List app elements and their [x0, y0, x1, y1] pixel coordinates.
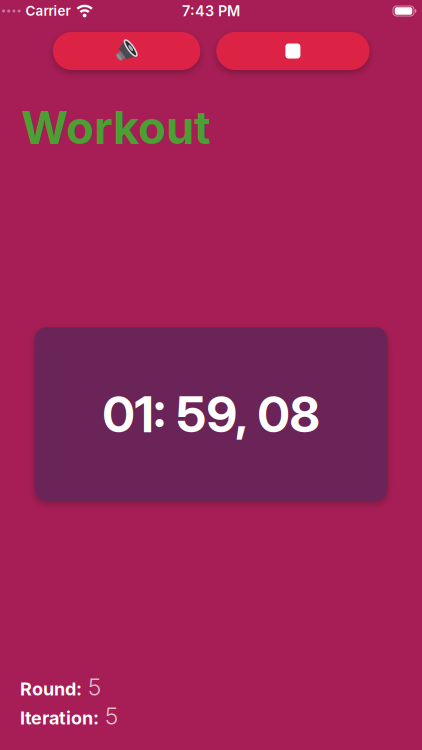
staticText: Workout — [21, 100, 211, 155]
staticText: Iteration: — [20, 707, 99, 729]
button[interactable]: Sound — [53, 32, 200, 70]
staticText: 5 — [105, 702, 118, 730]
staticText: Carrier — [26, 3, 71, 19]
staticText: 5 — [88, 673, 101, 701]
staticText: Round: — [20, 678, 82, 700]
staticText: 7:43 PM — [182, 2, 240, 20]
staticText: 01: 59, 08 — [102, 384, 319, 444]
button[interactable]: Stop — [216, 32, 369, 70]
